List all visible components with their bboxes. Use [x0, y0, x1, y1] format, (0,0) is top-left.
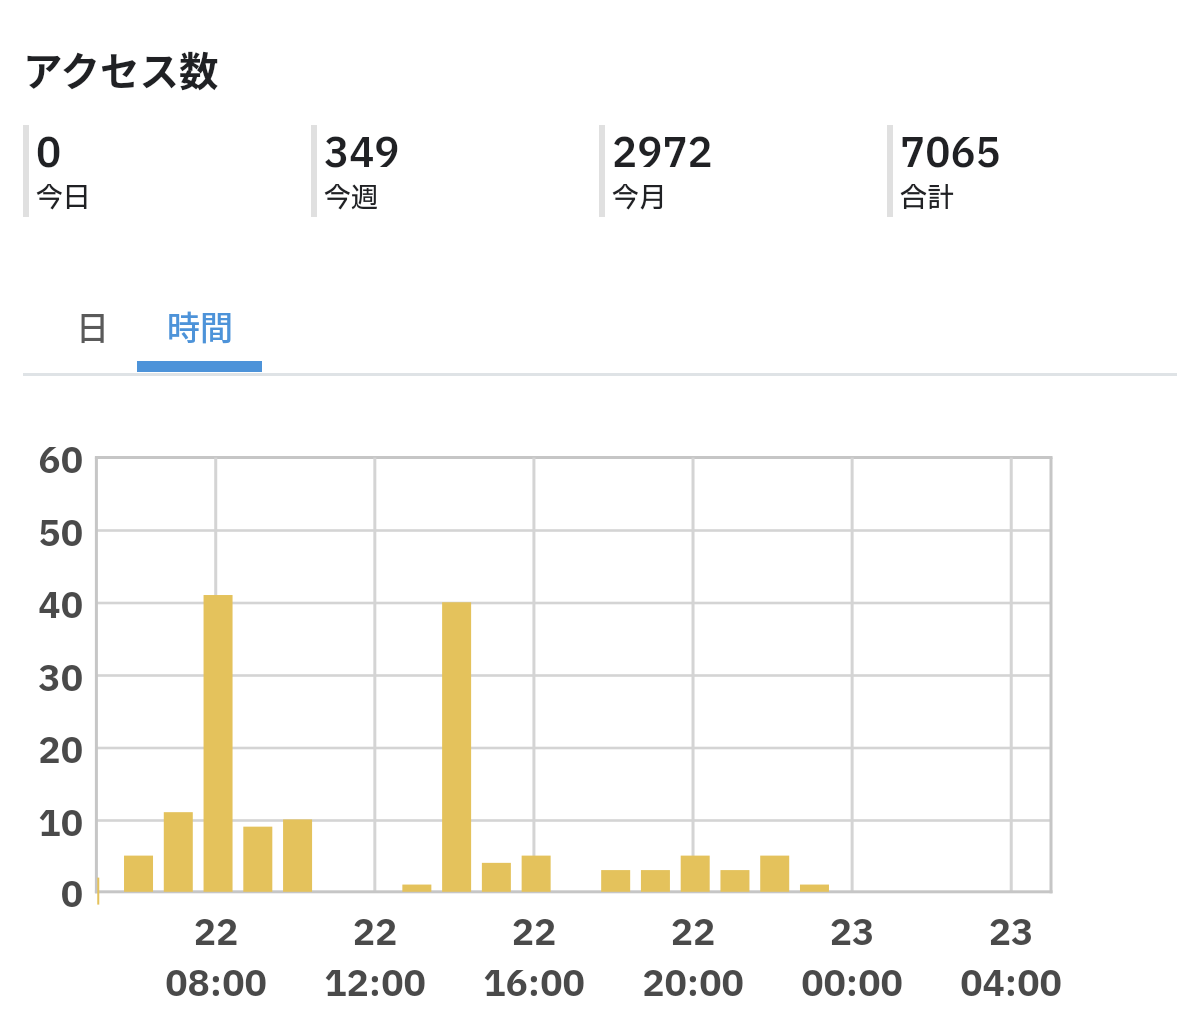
- staticText: 30: [10, 653, 83, 706]
- staticText: 50: [10, 508, 83, 561]
- staticText: 10: [10, 798, 83, 851]
- staticText: 合計: [900, 178, 954, 218]
- staticText: アクセス数: [23, 40, 219, 97]
- staticText: 日: [76, 302, 109, 350]
- button[interactable]: 日: [36, 290, 149, 372]
- button[interactable]: 0: [23, 125, 311, 225]
- staticText: 349: [324, 125, 400, 185]
- button[interactable]: 時間: [137, 290, 262, 372]
- staticText: 60: [10, 435, 83, 488]
- staticText: 23: [921, 907, 1101, 960]
- staticText: 00:00: [762, 958, 942, 1011]
- staticText: 今日: [36, 178, 90, 218]
- staticText: 22: [603, 907, 783, 960]
- staticText: 22: [126, 907, 306, 960]
- staticText: 12:00: [285, 958, 465, 1011]
- staticText: 今週: [324, 178, 378, 218]
- staticText: 時間: [167, 302, 233, 350]
- staticText: 40: [10, 580, 83, 633]
- staticText: 08:00: [126, 958, 306, 1011]
- staticText: 22: [285, 907, 465, 960]
- staticText: 23: [762, 907, 942, 960]
- staticText: 20:00: [603, 958, 783, 1011]
- staticText: 0: [36, 125, 62, 185]
- staticText: 16:00: [444, 958, 624, 1011]
- staticText: 04:00: [921, 958, 1101, 1011]
- staticText: 7065: [900, 125, 1001, 185]
- button[interactable]: 349: [311, 125, 599, 225]
- staticText: 今月: [612, 178, 666, 218]
- staticText: 22: [444, 907, 624, 960]
- staticText: 0: [10, 869, 83, 922]
- staticText: 20: [10, 725, 83, 778]
- staticText: 2972: [612, 125, 713, 185]
- button[interactable]: 2972: [599, 125, 887, 225]
- button[interactable]: 7065: [887, 125, 1175, 225]
